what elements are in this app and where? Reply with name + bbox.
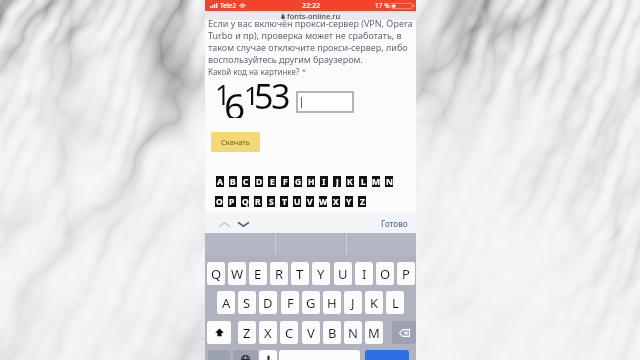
staticText: X: [264, 324, 272, 342]
staticText: C: [285, 324, 294, 342]
staticText: D: [256, 176, 263, 187]
button[interactable]: V: [302, 321, 320, 344]
button[interactable]: Z: [238, 321, 256, 344]
staticText: L: [392, 294, 399, 312]
staticText: F: [283, 176, 288, 187]
button[interactable]: Q: [207, 262, 225, 285]
staticText: Скачать: [221, 137, 250, 147]
button[interactable]: [297, 92, 353, 112]
button[interactable]: Globe: [233, 350, 258, 360]
button[interactable]: Space: [279, 350, 360, 360]
staticText: X: [333, 196, 339, 207]
staticText: O: [380, 265, 391, 283]
staticText: таком случае отключите прокси-сервер, ли…: [208, 41, 408, 53]
button[interactable]: E: [249, 262, 267, 285]
staticText: 17 %: [375, 1, 390, 10]
button[interactable]: I: [355, 262, 373, 285]
button[interactable]: L: [386, 291, 404, 314]
staticText: 1: [215, 76, 231, 113]
staticText: Q: [242, 196, 249, 207]
staticText: B: [230, 176, 236, 187]
staticText: K: [370, 294, 379, 312]
button[interactable]: H: [323, 291, 341, 314]
staticText: M: [368, 324, 380, 342]
staticText: H: [308, 176, 315, 187]
staticText: S: [269, 196, 274, 207]
button[interactable]: C: [280, 321, 298, 344]
staticText: S: [243, 294, 251, 312]
button[interactable]: N: [344, 321, 362, 344]
staticText: Q: [211, 265, 222, 283]
button[interactable]: Backspace: [392, 321, 416, 344]
staticText: Y: [346, 196, 352, 207]
staticText: Tele2: [220, 1, 237, 10]
staticText: Если у вас включён прокси-сервер (VPN, O…: [208, 17, 413, 29]
staticText: M: [372, 176, 380, 187]
staticText: *: [302, 67, 306, 77]
staticText: J: [351, 294, 355, 312]
staticText: E: [270, 176, 275, 187]
button[interactable]: K: [365, 291, 383, 314]
staticText: R: [255, 196, 261, 207]
staticText: I: [362, 265, 367, 283]
staticText: K: [347, 176, 353, 187]
staticText: G: [306, 294, 316, 312]
staticText: U: [338, 265, 348, 283]
staticText: 6: [224, 80, 246, 118]
button[interactable]: Next field: [234, 215, 253, 233]
staticText: G: [295, 176, 302, 187]
button[interactable]: Previous field: [215, 215, 234, 233]
button[interactable]: M: [365, 321, 383, 344]
staticText: Какой код на картинке?: [208, 66, 300, 77]
staticText: J: [336, 176, 339, 187]
staticText: T: [282, 196, 287, 207]
button[interactable]: Dictation: [259, 350, 277, 360]
button[interactable]: R: [270, 262, 288, 285]
staticText: T: [296, 265, 304, 283]
button[interactable]: P: [397, 262, 415, 285]
button[interactable]: U: [334, 262, 352, 285]
staticText: O: [216, 196, 223, 207]
button[interactable]: F: [281, 291, 299, 314]
staticText: 3: [271, 73, 291, 111]
staticText: Готово: [381, 218, 408, 229]
staticText: C: [243, 176, 249, 187]
staticText: W: [231, 265, 244, 283]
button[interactable]: A: [217, 291, 235, 314]
staticText: fonts-online.ru: [287, 11, 341, 21]
button[interactable]: W: [228, 262, 246, 285]
staticText: N: [386, 176, 393, 187]
button[interactable]: J: [344, 291, 362, 314]
staticText: Y: [317, 265, 325, 283]
staticText: P: [402, 265, 410, 283]
staticText: Z: [243, 324, 251, 342]
button[interactable]: S: [238, 291, 256, 314]
staticText: D: [263, 294, 273, 312]
staticText: B: [328, 324, 337, 342]
staticText: 22:22: [302, 1, 320, 11]
staticText: F: [287, 294, 294, 312]
staticText: 1: [244, 77, 259, 112]
button[interactable]: X: [259, 321, 277, 344]
staticText: U: [294, 196, 301, 207]
button[interactable]: Shift: [207, 321, 231, 344]
button[interactable]: Готово: [381, 218, 408, 229]
staticText: N: [348, 324, 358, 342]
staticText: I: [322, 176, 326, 187]
button[interactable]: Y: [312, 262, 330, 285]
button[interactable]: B: [323, 321, 341, 344]
staticText: A: [222, 294, 231, 312]
button[interactable]: T: [291, 262, 309, 285]
staticText: R: [275, 265, 284, 283]
button[interactable]: Скачать: [211, 132, 260, 152]
button[interactable]: Go: [365, 350, 409, 360]
button[interactable]: O: [376, 262, 394, 285]
staticText: W: [319, 196, 327, 207]
staticText: Z: [360, 196, 365, 207]
staticText: V: [307, 324, 315, 342]
staticText: A: [217, 176, 223, 187]
button[interactable]: D: [259, 291, 277, 314]
button[interactable]: G: [302, 291, 320, 314]
staticText: L: [361, 176, 366, 187]
